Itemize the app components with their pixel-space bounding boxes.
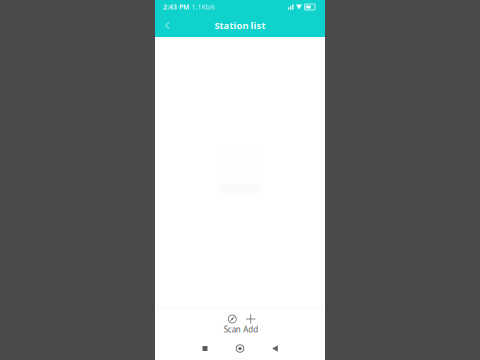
button[interactable]: Back: [155, 14, 180, 37]
staticText: Add: [243, 324, 258, 335]
button[interactable]: Add: [241, 307, 260, 337]
button[interactable]: Recent apps: [187, 337, 222, 360]
staticText: 2:43 PM: [163, 3, 189, 11]
button[interactable]: Back: [257, 337, 292, 360]
staticText: Scan: [224, 324, 241, 335]
staticText: Station list: [214, 19, 265, 32]
button[interactable]: Home: [222, 337, 257, 360]
button[interactable]: Scan: [223, 307, 241, 337]
staticText: 1.1Kb/s: [191, 3, 214, 11]
